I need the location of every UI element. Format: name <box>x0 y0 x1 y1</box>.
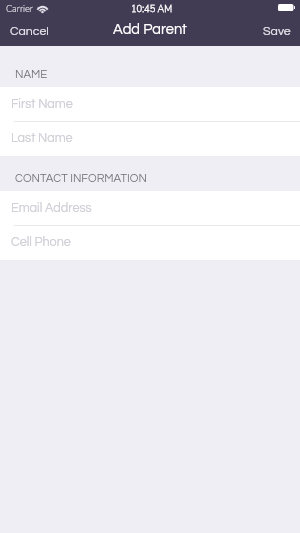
staticText: Cell Phone <box>11 236 71 249</box>
staticText: Email Address <box>11 202 92 215</box>
staticText: First Name <box>11 98 73 111</box>
other: Battery full <box>278 4 295 11</box>
other: Wi-Fi signal <box>38 6 47 13</box>
staticText: Last Name <box>11 132 73 145</box>
button[interactable]: Email Address <box>0 191 300 225</box>
staticText: 10:45 AM <box>131 3 173 16</box>
button[interactable]: Save <box>254 21 300 42</box>
staticText: NAME <box>15 69 48 81</box>
button[interactable]: Cancel <box>0 21 58 42</box>
button[interactable]: First Name <box>0 87 300 121</box>
staticText: Save <box>263 25 291 38</box>
button[interactable]: Last Name <box>0 121 300 156</box>
staticText: CONTACT INFORMATION <box>15 173 147 185</box>
staticText: Cancel <box>10 25 49 38</box>
button[interactable]: Cell Phone <box>0 225 300 260</box>
staticText: Carrier <box>6 3 33 16</box>
staticText: Add Parent <box>113 22 187 37</box>
